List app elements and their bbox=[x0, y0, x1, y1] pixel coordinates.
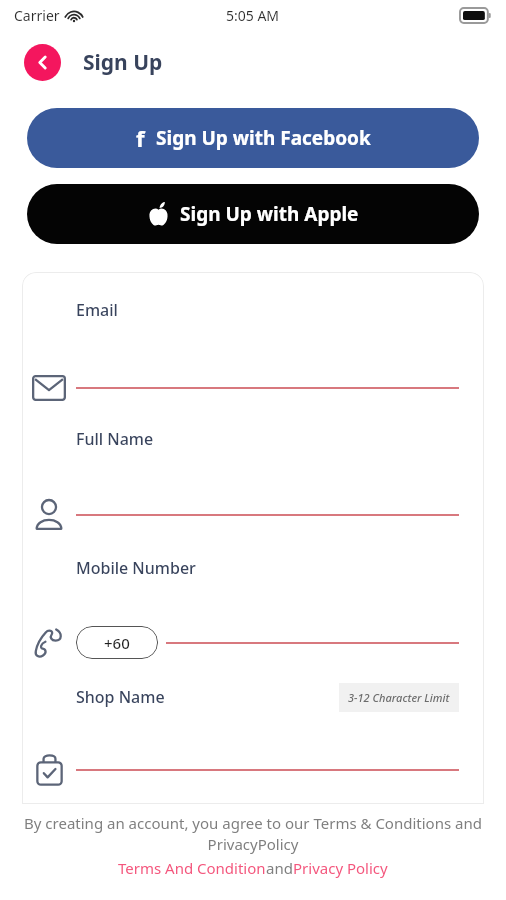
staticText: By creating an account, you agree to our… bbox=[16, 813, 490, 855]
staticText: Sign Up bbox=[83, 48, 163, 77]
button[interactable]: Back bbox=[24, 44, 61, 81]
button[interactable]: Terms And Condition bbox=[118, 858, 266, 878]
button[interactable]: Email bbox=[22, 290, 484, 419]
button[interactable]: Full Name bbox=[22, 419, 484, 548]
staticText: and bbox=[266, 858, 293, 878]
staticText: Shop Name bbox=[76, 686, 165, 708]
staticText: 5:05 AM bbox=[226, 6, 280, 25]
staticText: Mobile Number bbox=[76, 557, 196, 579]
staticText: Sign Up with Facebook bbox=[156, 125, 371, 151]
button[interactable]: f bbox=[27, 108, 479, 168]
button[interactable]: +60 bbox=[76, 626, 158, 659]
staticText: 3-12 Character Limit bbox=[348, 690, 450, 705]
button[interactable]: Mobile Number bbox=[22, 548, 484, 677]
staticText: Email bbox=[76, 299, 118, 321]
staticText: Carrier bbox=[14, 6, 60, 25]
button[interactable]: Shop Name bbox=[22, 677, 484, 804]
button[interactable]: Privacy Policy bbox=[293, 858, 388, 878]
staticText: f bbox=[136, 123, 145, 153]
staticText: Full Name bbox=[76, 428, 154, 450]
staticText: Sign Up with Apple bbox=[180, 201, 359, 227]
button[interactable]: Sign Up with Apple bbox=[27, 184, 479, 244]
staticText: +60 bbox=[104, 633, 130, 653]
